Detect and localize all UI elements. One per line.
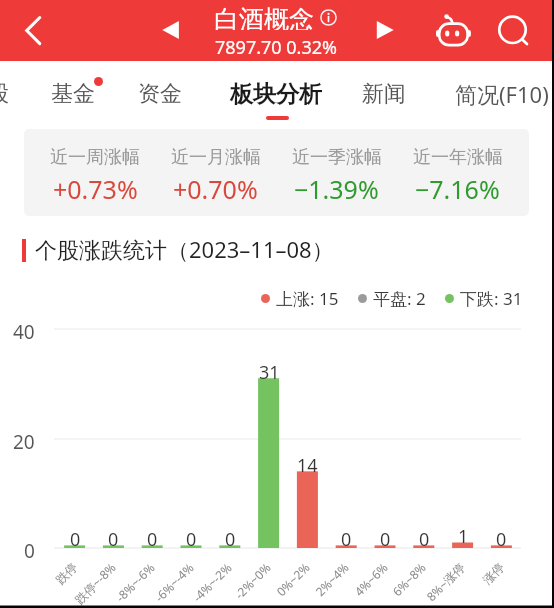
staticText: 白酒概念 [214, 4, 314, 30]
staticText: 14 [297, 453, 318, 478]
staticText: 0 [496, 527, 507, 552]
staticText: 跌停 [52, 560, 80, 587]
staticText: -2%~0% [231, 559, 274, 602]
staticText: 涨停 [479, 560, 507, 587]
staticText: 基金 [51, 80, 95, 108]
staticText: 新闻 [362, 80, 406, 108]
staticText: 0 [186, 527, 197, 552]
staticText: 4%~6% [351, 559, 391, 599]
staticText: 0 [24, 538, 35, 564]
staticText: -6%~-4% [151, 559, 197, 605]
staticText: +0.73% [53, 172, 138, 206]
button[interactable]: AI assistant [429, 0, 478, 61]
staticText: 0 [419, 527, 430, 552]
staticText: 近一年涨幅 [413, 146, 503, 169]
staticText: −1.39% [294, 172, 379, 206]
staticText: 0 [70, 527, 81, 552]
staticText: 0 [380, 527, 391, 552]
button[interactable]: 简况(F10) [416, 68, 554, 120]
staticText: 0 [147, 527, 158, 552]
staticText: 6%~8% [389, 559, 429, 599]
button[interactable]: Previous sector [152, 0, 190, 61]
button[interactable]: 下跌: 31 [445, 287, 523, 310]
staticText: 近一周涨幅 [50, 146, 140, 169]
staticText: 下跌: 31 [460, 287, 523, 310]
button[interactable]: 近一周涨幅 [24, 129, 529, 216]
button[interactable]: 新闻 [353, 68, 415, 120]
button[interactable]: 上涨: 15 [261, 287, 339, 310]
staticText: 0 [108, 527, 119, 552]
staticText: 简况(F10) [455, 79, 549, 109]
button[interactable]: Back [0, 0, 56, 61]
button[interactable]: 白酒概念 [214, 4, 337, 30]
staticText: -8%~-6% [112, 559, 158, 605]
staticText: -4%~-2% [189, 559, 235, 605]
staticText: 1 [458, 524, 469, 549]
staticText: 近一季涨幅 [292, 146, 382, 169]
staticText: 20 [13, 429, 35, 455]
button[interactable]: 平盘: 2 [358, 287, 426, 310]
button[interactable]: 基金 [42, 68, 104, 120]
button[interactable]: Next sector [367, 0, 405, 61]
staticText: 0 [341, 527, 352, 552]
staticText: 7897.70 0.32% [215, 35, 337, 60]
button[interactable]: 个股涨跌统计（2023–11–08） [16, 232, 315, 268]
staticText: 31 [259, 360, 280, 385]
staticText: 股 [0, 80, 9, 108]
button[interactable]: 股 [0, 68, 18, 120]
staticText: 0%~2% [273, 559, 313, 599]
staticText: 平盘: 2 [373, 287, 426, 310]
staticText: −7.16% [415, 172, 500, 206]
staticText: 0 [225, 527, 236, 552]
staticText: 跌停~-8% [71, 559, 119, 607]
staticText: 板块分析 [230, 80, 322, 109]
staticText: +0.70% [173, 172, 258, 206]
staticText: 个股涨跌统计（2023–11–08） [35, 234, 334, 264]
staticText: 资金 [138, 80, 182, 108]
button[interactable]: 板块分析 [223, 68, 329, 120]
staticText: 40 [13, 319, 35, 345]
button[interactable]: 资金 [129, 68, 191, 120]
button[interactable]: Search [488, 0, 537, 61]
staticText: 2%~4% [312, 559, 352, 599]
staticText: 上涨: 15 [276, 287, 339, 310]
staticText: 近一月涨幅 [171, 146, 261, 169]
staticText: 8%~涨停 [423, 559, 468, 604]
